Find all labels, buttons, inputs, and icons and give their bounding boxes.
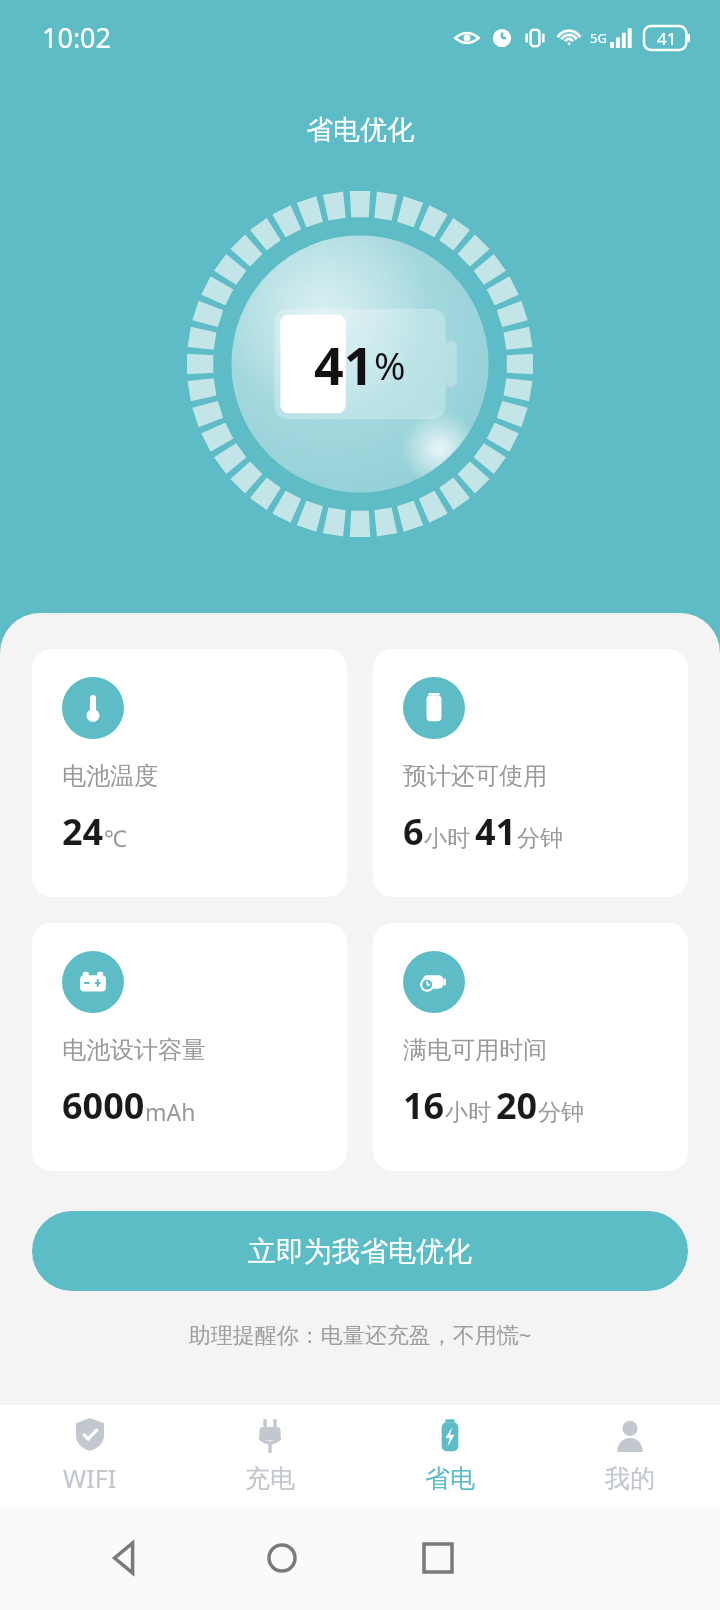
- staticText: 省电优化: [0, 113, 720, 147]
- button[interactable]: 电池设计容量: [32, 923, 347, 1171]
- button[interactable]: 立即为我省电优化: [32, 1211, 688, 1291]
- button[interactable]: 满电可用时间: [373, 923, 688, 1171]
- button[interactable]: 省电: [360, 1405, 540, 1505]
- staticText: 5G: [590, 29, 607, 47]
- button[interactable]: 充电: [180, 1405, 360, 1505]
- staticText: 充电: [245, 1463, 295, 1494]
- button[interactable]: WIFI: [0, 1405, 180, 1505]
- staticText: 41: [475, 807, 517, 856]
- staticText: 24: [62, 807, 104, 856]
- button[interactable]: Recents: [408, 1528, 468, 1588]
- button[interactable]: Home: [252, 1528, 312, 1588]
- button[interactable]: Back: [96, 1528, 156, 1588]
- staticText: mAh: [145, 1096, 196, 1127]
- staticText: 电池温度: [62, 761, 158, 791]
- staticText: 电池设计容量: [62, 1035, 206, 1065]
- button[interactable]: 预计还可使用: [373, 649, 688, 897]
- staticText: 我的: [605, 1463, 655, 1494]
- staticText: 20: [496, 1081, 538, 1130]
- staticText: 分钟: [538, 1098, 584, 1127]
- button[interactable]: 我的: [540, 1405, 720, 1505]
- staticText: 41: [657, 27, 677, 50]
- staticText: 助理提醒你：电量还充盈，不用慌~: [0, 1319, 720, 1349]
- staticText: 预计还可使用: [403, 761, 547, 791]
- staticText: 小时: [445, 1098, 491, 1127]
- staticText: 6: [403, 807, 424, 856]
- staticText: 小时: [424, 824, 470, 853]
- staticText: 10:02: [42, 19, 112, 56]
- staticText: 41: [314, 329, 374, 400]
- staticText: 省电: [425, 1463, 475, 1494]
- staticText: 6000: [62, 1081, 145, 1130]
- button[interactable]: 电池温度: [32, 649, 347, 897]
- staticText: 满电可用时间: [403, 1035, 547, 1065]
- staticText: WIFI: [63, 1461, 117, 1495]
- staticText: 立即为我省电优化: [248, 1234, 472, 1269]
- staticText: %: [374, 339, 406, 391]
- staticText: ℃: [104, 822, 127, 853]
- staticText: 16: [403, 1081, 445, 1130]
- staticText: 分钟: [517, 824, 563, 853]
